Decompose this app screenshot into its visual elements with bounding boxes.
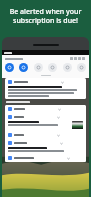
button[interactable]: Flashlight	[48, 63, 57, 72]
button[interactable]: Bluetooth	[19, 63, 28, 72]
button[interactable]: Do not disturb	[34, 63, 43, 72]
button[interactable]: Auto-rotate	[63, 63, 72, 72]
button[interactable]: Status icon	[70, 57, 73, 60]
button[interactable]	[5, 105, 86, 113]
button[interactable]: Status icon	[74, 57, 77, 60]
button[interactable]: Status icon	[82, 57, 85, 60]
button[interactable]: Status icon	[78, 57, 81, 60]
button[interactable]	[5, 78, 86, 99]
button[interactable]	[5, 131, 86, 139]
staticText: Be alerted when your subscription is due…	[5, 7, 86, 25]
button[interactable]	[5, 113, 86, 131]
button[interactable]: Wi-Fi	[5, 63, 14, 72]
button[interactable]: Battery saver	[77, 63, 86, 72]
button[interactable]	[5, 139, 86, 154]
button[interactable]	[5, 154, 86, 162]
